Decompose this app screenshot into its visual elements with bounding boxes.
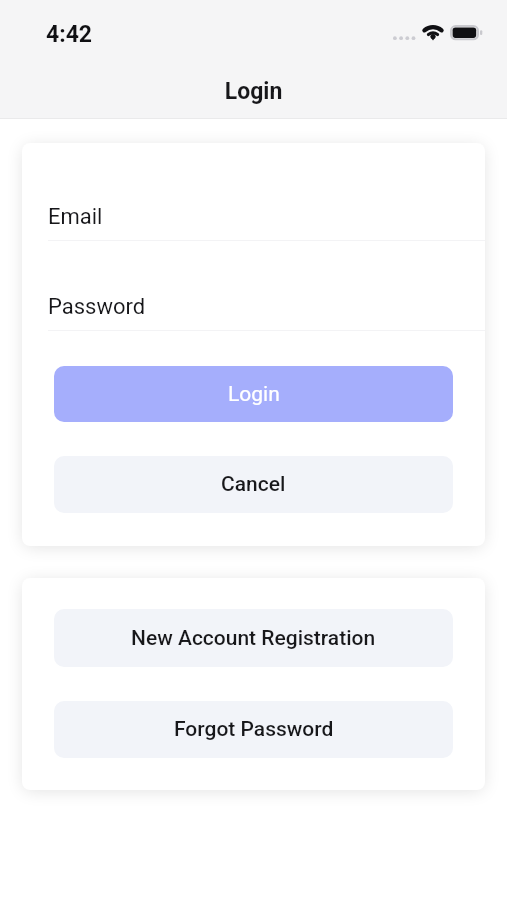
other: Battery bbox=[450, 25, 483, 41]
staticText: New Account Registration bbox=[131, 626, 376, 651]
button[interactable]: Password bbox=[22, 241, 485, 331]
button[interactable]: Forgot Password bbox=[54, 701, 453, 758]
button[interactable]: Email bbox=[22, 143, 485, 241]
button[interactable]: Cancel bbox=[54, 456, 453, 513]
staticText: Forgot Password bbox=[174, 717, 334, 742]
button[interactable]: New Account Registration bbox=[54, 609, 453, 667]
staticText: Login bbox=[228, 382, 280, 407]
staticText: Cancel bbox=[221, 472, 286, 497]
staticText: Login bbox=[0, 78, 507, 105]
other: Cellular signal bbox=[392, 34, 418, 43]
staticText: 4:42 bbox=[46, 21, 93, 48]
staticText: Password bbox=[48, 294, 146, 320]
other: Wi-Fi bbox=[422, 23, 444, 41]
staticText: Email bbox=[48, 204, 103, 230]
button[interactable]: Login bbox=[54, 366, 453, 422]
